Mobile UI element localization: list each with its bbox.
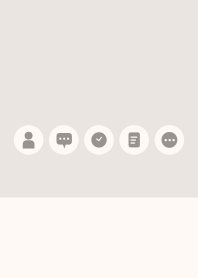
button[interactable]: More xyxy=(155,125,184,155)
button[interactable]: Complete xyxy=(84,125,114,155)
button[interactable]: Notes xyxy=(119,125,149,155)
button[interactable]: Messages xyxy=(49,125,79,155)
button[interactable]: Profile xyxy=(14,125,43,155)
